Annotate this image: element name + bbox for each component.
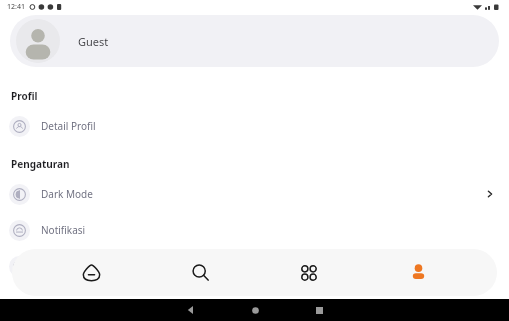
staticText: Informasi — [41, 259, 87, 273]
staticText: 12:41 — [7, 2, 25, 12]
button[interactable]: Informasi — [0, 253, 509, 279]
button[interactable]: Detail Profil — [0, 113, 509, 139]
button[interactable]: Profile — [388, 249, 448, 296]
staticText: Detail Profil — [41, 119, 96, 133]
staticText: Guest — [78, 34, 109, 49]
button[interactable]: Dark Mode — [0, 181, 509, 207]
staticText: Notifikasi — [41, 223, 86, 237]
button[interactable]: Menu — [279, 249, 339, 296]
button[interactable]: Notifikasi — [0, 217, 509, 243]
button[interactable]: Search — [170, 249, 230, 296]
staticText: Pengaturan — [11, 157, 70, 171]
button[interactable]: Home — [61, 249, 121, 296]
staticText: Dark Mode — [41, 187, 93, 201]
staticText: Profil — [11, 89, 38, 103]
button[interactable]: Guest — [10, 15, 499, 67]
